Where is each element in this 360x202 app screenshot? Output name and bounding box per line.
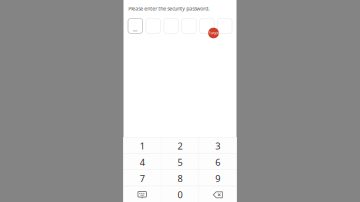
button[interactable]: Password digit field — [200, 18, 214, 33]
button[interactable]: Delete — [199, 186, 236, 202]
staticText: 6 — [215, 156, 220, 168]
button[interactable]: 0 — [161, 186, 199, 202]
staticText: 9 — [215, 172, 220, 184]
button[interactable]: Password digit field — [217, 18, 232, 33]
button[interactable]: Forgot password — [208, 28, 219, 38]
button[interactable]: 1 — [123, 137, 161, 153]
button[interactable]: 9 — [199, 169, 236, 186]
staticText: 3 — [215, 140, 220, 152]
staticText: 4 — [140, 156, 145, 168]
staticText: 0 — [177, 189, 182, 201]
button[interactable]: Password digit field — [182, 18, 196, 33]
button[interactable]: 8 — [161, 169, 199, 186]
button[interactable]: 4 — [123, 153, 161, 169]
button[interactable]: 7 — [123, 169, 161, 186]
staticText: 7 — [140, 172, 145, 184]
button[interactable]: 5 — [161, 153, 199, 169]
staticText: 1 — [140, 140, 145, 152]
staticText: Please enter the security password. — [128, 5, 209, 12]
button[interactable]: 6 — [199, 153, 236, 169]
button[interactable]: Hide keyboard — [123, 186, 161, 202]
button[interactable]: Password digit field — [164, 18, 178, 33]
staticText: 2 — [177, 140, 182, 152]
staticText: 5 — [177, 156, 182, 168]
button[interactable]: Password digit field — [128, 18, 143, 33]
button[interactable]: 3 — [199, 137, 236, 153]
button[interactable]: 2 — [161, 137, 199, 153]
staticText: Forgot — [208, 31, 218, 35]
staticText: 8 — [177, 172, 182, 184]
button[interactable]: Password digit field — [146, 18, 160, 33]
